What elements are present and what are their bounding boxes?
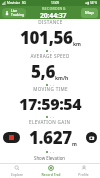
staticText: Tracking <box>11 13 24 17</box>
staticText: Explore <box>11 172 23 177</box>
button[interactable]: Show Elevation <box>0 153 100 163</box>
button[interactable]: Stop recording <box>3 132 20 143</box>
staticText: 17:59:54 <box>19 93 82 115</box>
button[interactable]: Map <box>81 8 98 18</box>
button[interactable]: Record Trail <box>34 164 67 178</box>
staticText: 1.627 <box>29 126 72 149</box>
staticText: km/h <box>55 75 69 82</box>
staticText: MOVING TIME <box>33 86 68 92</box>
staticText: Live <box>11 9 18 13</box>
button[interactable]: Take photo <box>86 132 97 143</box>
staticText: Show Elevation <box>34 155 66 161</box>
staticText: DISTANCE <box>38 19 63 25</box>
staticText: 101,56 <box>20 26 73 49</box>
button[interactable]: Explore <box>0 164 34 178</box>
staticText: 13:09 <box>51 1 60 5</box>
staticText: m <box>72 141 77 148</box>
staticText: Profile <box>78 172 89 177</box>
staticText: Map <box>85 10 94 16</box>
staticText: 20:44:37 <box>40 11 67 19</box>
staticText: RECORDING <box>42 6 66 11</box>
staticText: km <box>73 41 81 48</box>
staticText: Record Trail <box>41 172 61 177</box>
button[interactable]: Live tracking <box>2 8 26 18</box>
staticText: 5,6 <box>31 60 55 83</box>
other: Live tracking <box>4 10 10 16</box>
staticText: AVERAGE SPEED <box>30 53 70 59</box>
staticText: ◂ ▮ 58 % <box>85 1 98 5</box>
staticText: Movistar 5G <box>7 1 26 5</box>
staticText: ELEVATION GAIN <box>29 119 71 125</box>
button[interactable]: Profile <box>67 164 100 178</box>
